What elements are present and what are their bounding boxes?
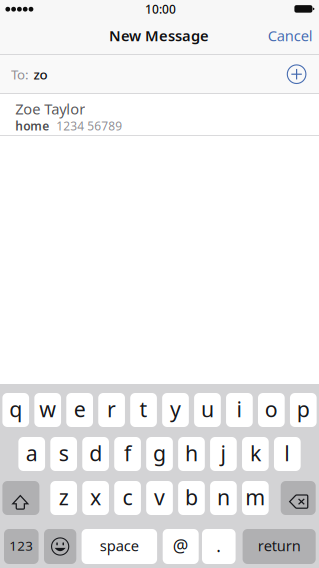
button[interactable]: Emoji — [44, 529, 76, 564]
staticText: d — [89, 439, 102, 467]
button[interactable]: space — [82, 529, 157, 564]
button[interactable]: q — [2, 393, 29, 427]
button[interactable]: Add contact — [280, 57, 314, 91]
staticText: return — [258, 536, 301, 555]
button[interactable]: g — [146, 437, 173, 471]
staticText: r — [107, 395, 116, 423]
button[interactable]: @ — [163, 529, 199, 564]
button[interactable]: y — [162, 393, 189, 427]
staticText: x — [90, 483, 101, 511]
button[interactable]: x — [82, 481, 109, 515]
staticText: a — [26, 439, 38, 467]
staticText: h — [185, 439, 198, 467]
staticText: home — [15, 118, 49, 134]
button[interactable]: v — [146, 481, 173, 515]
staticText: c — [123, 483, 133, 511]
staticText: y — [170, 395, 181, 423]
button[interactable]: o — [258, 393, 285, 427]
staticText: u — [201, 395, 214, 423]
staticText: b — [185, 483, 198, 511]
staticText: f — [124, 439, 131, 467]
button[interactable]: s — [50, 437, 77, 471]
staticText: i — [236, 395, 242, 423]
button[interactable]: d — [82, 437, 109, 471]
button[interactable]: j — [210, 437, 237, 471]
staticText: g — [153, 439, 166, 467]
button[interactable]: e — [66, 393, 93, 427]
button[interactable]: Zoe Taylor — [0, 94, 319, 136]
button[interactable]: t — [130, 393, 157, 427]
button[interactable]: Cancel — [258, 19, 319, 53]
staticText: 1234 56789 — [56, 118, 122, 134]
staticText: s — [59, 439, 69, 467]
staticText: j — [220, 439, 226, 467]
staticText: To: — [11, 65, 29, 83]
button[interactable]: . — [202, 529, 236, 564]
button[interactable]: r — [98, 393, 125, 427]
staticText: n — [217, 483, 230, 511]
button[interactable]: k — [242, 437, 269, 471]
button[interactable]: return — [243, 529, 316, 564]
staticText: q — [9, 395, 22, 423]
button[interactable]: l — [274, 437, 301, 471]
staticText: e — [74, 395, 86, 423]
staticText: . — [216, 534, 221, 557]
staticText: o — [265, 395, 278, 423]
button[interactable]: n — [210, 481, 237, 515]
button[interactable]: Delete — [281, 481, 316, 515]
staticText: @ — [173, 534, 189, 557]
button[interactable]: Shift — [2, 481, 39, 515]
button[interactable]: p — [290, 393, 317, 427]
button[interactable]: 123 — [4, 529, 39, 564]
button[interactable]: h — [178, 437, 205, 471]
button[interactable]: c — [114, 481, 141, 515]
button[interactable]: w — [34, 393, 61, 427]
staticText: w — [39, 395, 56, 423]
staticText: Zoe Taylor — [15, 99, 85, 119]
button[interactable]: i — [226, 393, 253, 427]
staticText: k — [250, 439, 261, 467]
staticText: zo — [33, 65, 47, 83]
staticText: m — [245, 483, 265, 511]
staticText: Cancel — [268, 26, 313, 45]
staticText: 123 — [9, 537, 33, 554]
staticText: l — [284, 439, 290, 467]
staticText: 10:00 — [145, 1, 176, 17]
staticText: space — [100, 536, 139, 555]
button[interactable]: m — [242, 481, 269, 515]
staticText: t — [139, 395, 147, 423]
button[interactable]: b — [178, 481, 205, 515]
staticText: v — [154, 483, 165, 511]
button[interactable]: u — [194, 393, 221, 427]
button[interactable]: z — [50, 481, 77, 515]
staticText: New Message — [109, 26, 209, 45]
staticText: p — [297, 395, 310, 423]
button[interactable]: a — [18, 437, 45, 471]
staticText: z — [59, 483, 69, 511]
button[interactable]: f — [114, 437, 141, 471]
